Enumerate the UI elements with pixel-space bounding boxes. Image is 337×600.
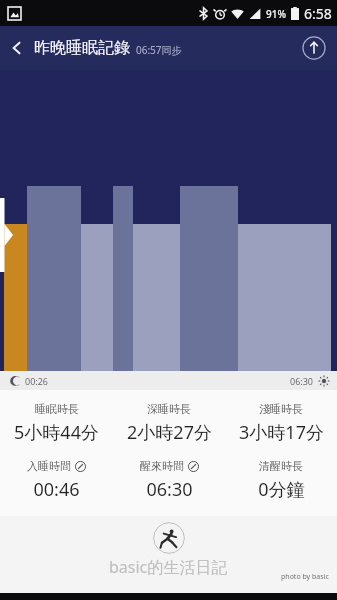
staticText: 00:26 [25, 375, 49, 387]
button[interactable]: Sync [299, 33, 329, 63]
button[interactable]: 睡眠時長 [0, 400, 113, 447]
button[interactable]: 深睡時長 [113, 400, 225, 447]
staticText: 00:46 [33, 477, 80, 502]
button[interactable]: Activity [153, 522, 185, 554]
staticText: 清醒時長 [259, 459, 303, 473]
button[interactable]: 醒來時間 [113, 457, 225, 504]
staticText: 入睡時間 [27, 459, 71, 473]
button[interactable]: 入睡時間 [0, 457, 113, 504]
staticText: 06:30 [290, 375, 314, 387]
staticText: 06:57同步 [136, 43, 182, 57]
button[interactable]: Back [0, 26, 34, 70]
staticText: 深睡時長 [147, 402, 191, 416]
staticText: 2小時27分 [127, 420, 212, 445]
button[interactable]: 清醒時長 [225, 457, 337, 504]
staticText: 5小時44分 [14, 420, 99, 445]
staticText: 3小時17分 [239, 420, 324, 445]
staticText: 淺睡時長 [259, 402, 303, 416]
staticText: photo by basic [281, 572, 329, 582]
staticText: 睡眠時長 [35, 402, 79, 416]
staticText: 6:58 [304, 4, 332, 23]
staticText: 醒來時間 [140, 459, 184, 473]
staticText: 91% [266, 7, 286, 21]
button[interactable]: 淺睡時長 [225, 400, 337, 447]
staticText: basic的生活日記 [109, 556, 228, 578]
staticText: 06:30 [146, 477, 193, 502]
staticText: 昨晚睡眠記錄 [34, 38, 130, 58]
staticText: 0分鐘 [258, 477, 305, 502]
